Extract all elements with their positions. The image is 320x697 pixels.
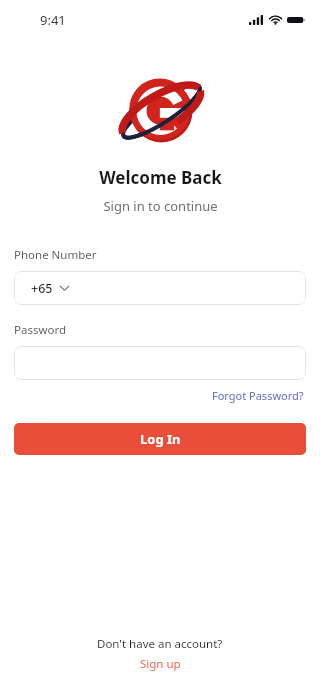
- button[interactable]: Log In: [14, 423, 306, 455]
- staticText: Password: [14, 322, 67, 338]
- staticText: Sign in to continue: [103, 197, 218, 215]
- staticText: Phone Number: [14, 247, 97, 263]
- button[interactable]: Forgot Password?: [210, 386, 306, 405]
- staticText: Log In: [140, 430, 181, 448]
- button[interactable]: +65: [14, 271, 306, 305]
- staticText: Welcome Back: [99, 166, 222, 189]
- button[interactable]: Sign up: [136, 655, 185, 673]
- button[interactable]: [14, 346, 306, 380]
- staticText: +65: [31, 280, 53, 297]
- staticText: Forgot Password?: [212, 388, 304, 403]
- staticText: Sign up: [140, 656, 181, 672]
- staticText: Don't have an account?: [97, 636, 223, 652]
- staticText: 9:41: [40, 11, 66, 29]
